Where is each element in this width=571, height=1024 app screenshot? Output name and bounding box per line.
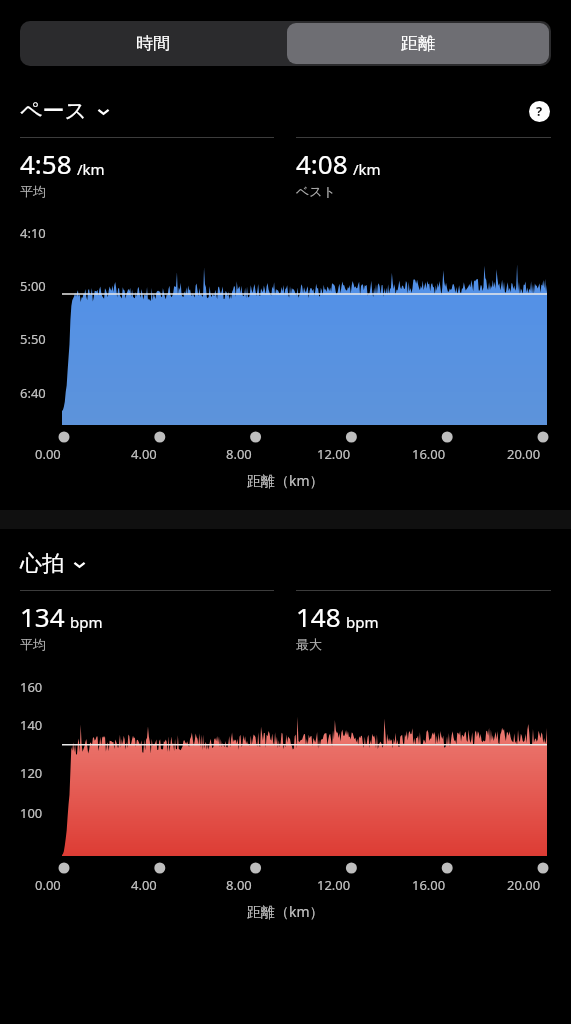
staticText: 4:58 bbox=[20, 146, 72, 181]
staticText: bpm bbox=[346, 612, 379, 632]
staticText: 160 bbox=[20, 678, 43, 696]
staticText: 20.00 bbox=[507, 876, 541, 894]
staticText: 最大 bbox=[296, 636, 322, 652]
staticText: ベスト bbox=[296, 183, 336, 199]
staticText: 4.00 bbox=[131, 876, 157, 894]
button[interactable]: ペース bbox=[20, 97, 112, 125]
button[interactable]: 時間 bbox=[20, 21, 285, 66]
button[interactable]: Help bbox=[527, 99, 551, 123]
staticText: 0.00 bbox=[35, 876, 61, 894]
staticText: 8.00 bbox=[226, 445, 252, 463]
staticText: /km bbox=[353, 159, 381, 179]
staticText: 4:10 bbox=[20, 224, 46, 242]
staticText: 5:50 bbox=[20, 330, 46, 348]
staticText: 12.00 bbox=[317, 876, 351, 894]
staticText: 距離（km） bbox=[247, 471, 324, 490]
staticText: 16.00 bbox=[412, 876, 446, 894]
staticText: 134 bbox=[20, 599, 65, 634]
staticText: 0.00 bbox=[35, 445, 61, 463]
staticText: 120 bbox=[20, 764, 43, 782]
staticText: 6:40 bbox=[20, 384, 46, 402]
button[interactable]: 134 bbox=[20, 590, 274, 652]
staticText: 距離 bbox=[401, 33, 435, 54]
staticText: 4.00 bbox=[131, 445, 157, 463]
button[interactable]: 距離 bbox=[287, 23, 549, 64]
staticText: 時間 bbox=[136, 33, 170, 54]
staticText: 距離（km） bbox=[247, 902, 324, 921]
staticText: 心拍 bbox=[20, 550, 64, 578]
staticText: 平均 bbox=[20, 636, 46, 652]
staticText: 8.00 bbox=[226, 876, 252, 894]
staticText: 4:08 bbox=[296, 146, 348, 181]
staticText: 20.00 bbox=[507, 445, 541, 463]
staticText: bpm bbox=[70, 612, 103, 632]
staticText: 148 bbox=[296, 599, 341, 634]
staticText: 平均 bbox=[20, 183, 46, 199]
staticText: ? bbox=[536, 102, 543, 120]
button[interactable]: 148 bbox=[296, 590, 551, 652]
staticText: /km bbox=[77, 159, 105, 179]
button[interactable]: 4:08 bbox=[296, 137, 551, 199]
staticText: 100 bbox=[20, 804, 43, 822]
staticText: ペース bbox=[20, 97, 88, 125]
staticText: 12.00 bbox=[317, 445, 351, 463]
button[interactable]: 4:58 bbox=[20, 137, 274, 199]
staticText: 5:00 bbox=[20, 277, 46, 295]
button[interactable]: 心拍 bbox=[20, 550, 88, 578]
staticText: 140 bbox=[20, 716, 43, 734]
staticText: 16.00 bbox=[412, 445, 446, 463]
